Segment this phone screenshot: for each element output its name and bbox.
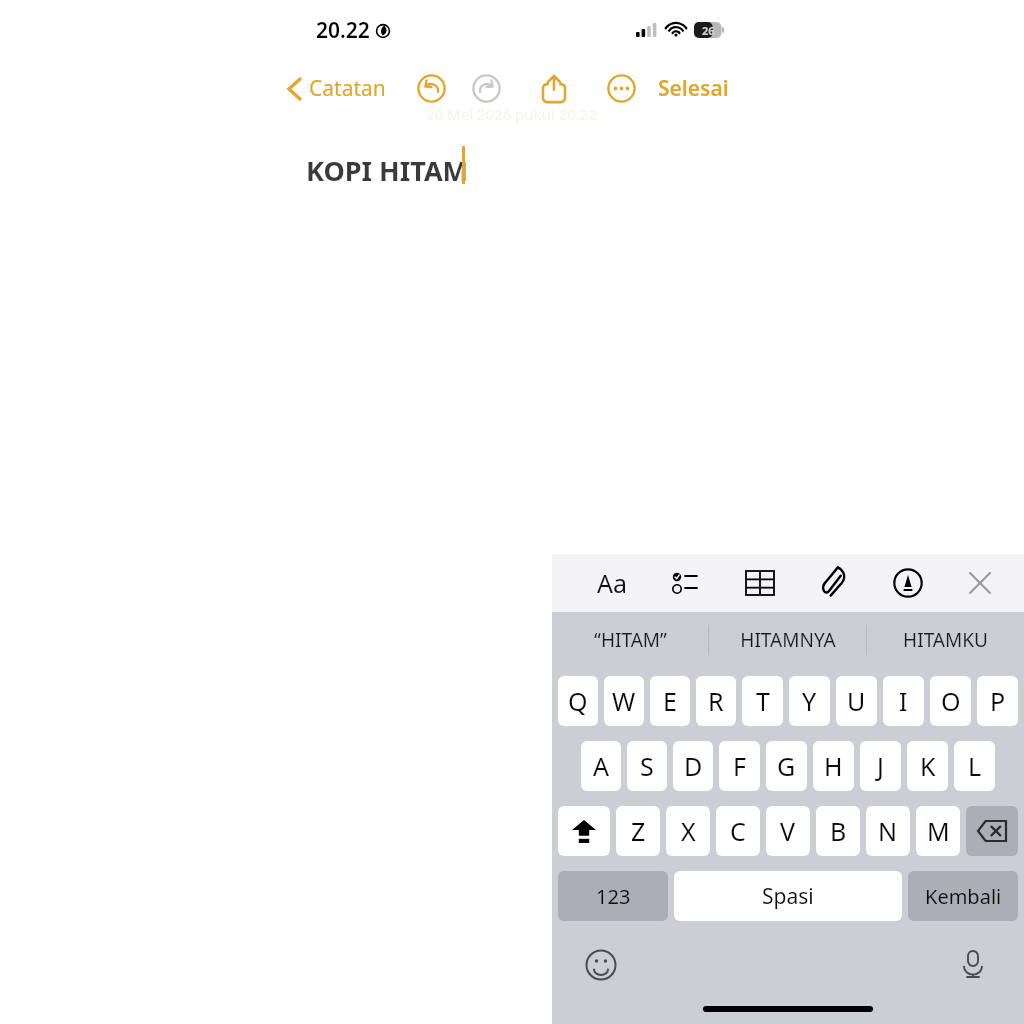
staticText: 20.22	[316, 16, 370, 45]
button[interactable]: V	[766, 806, 810, 856]
button[interactable]: K	[907, 741, 948, 791]
staticText: Kembali	[925, 883, 1002, 910]
button[interactable]: Kembali	[908, 871, 1018, 921]
staticText: Q	[568, 684, 588, 718]
staticText: O	[941, 684, 961, 718]
button[interactable]: G	[766, 741, 807, 791]
button[interactable]: Q	[558, 676, 598, 726]
staticText: D	[684, 749, 703, 783]
button[interactable]: Checklist	[666, 563, 706, 603]
staticText: KOPI HITAM	[306, 152, 469, 189]
staticText: C	[730, 814, 746, 848]
staticText: U	[847, 684, 866, 718]
button[interactable]: Spasi	[674, 871, 902, 921]
staticText: F	[733, 749, 746, 783]
staticText: M	[927, 814, 950, 848]
button[interactable]: Z	[616, 806, 660, 856]
button[interactable]: Emoji	[580, 944, 622, 986]
staticText: E	[663, 684, 677, 718]
button[interactable]: S	[627, 741, 667, 791]
button[interactable]: B	[816, 806, 860, 856]
staticText: B	[830, 814, 847, 848]
staticText: HITAMKU	[903, 627, 988, 653]
button[interactable]: Markup	[888, 563, 928, 603]
button[interactable]: J	[860, 741, 901, 791]
button[interactable]: E	[650, 676, 690, 726]
staticText: 26 Mei 2026 pukul 20.22	[426, 104, 598, 124]
button[interactable]: Dictate	[952, 944, 994, 986]
button[interactable]: I	[883, 676, 924, 726]
staticText: Selesai	[658, 74, 729, 103]
button[interactable]: Catatan	[284, 68, 388, 109]
button[interactable]: More	[600, 67, 642, 109]
button[interactable]: T	[742, 676, 783, 726]
staticText: P	[990, 684, 1006, 718]
button[interactable]: N	[866, 806, 910, 856]
button[interactable]: Attach	[814, 563, 854, 603]
button[interactable]: Text format	[592, 563, 632, 603]
button[interactable]: Share	[533, 67, 575, 109]
staticText: K	[920, 749, 936, 783]
staticText: X	[681, 814, 696, 848]
staticText: A	[593, 749, 609, 783]
staticText: HITAMNYA	[740, 627, 836, 653]
button[interactable]: “HITAM”	[552, 612, 708, 668]
staticText: W	[612, 684, 636, 718]
staticText: N	[878, 814, 898, 848]
button[interactable]: H	[813, 741, 854, 791]
staticText: “HITAM”	[594, 627, 667, 653]
staticText: R	[708, 684, 724, 718]
button[interactable]: C	[716, 806, 760, 856]
button[interactable]: 123	[558, 871, 668, 921]
button[interactable]: F	[719, 741, 760, 791]
button[interactable]: HITAMKU	[867, 612, 1024, 668]
button[interactable]: Selesai	[650, 68, 737, 109]
button[interactable]: HITAMNYA	[709, 612, 866, 668]
staticText: H	[824, 749, 843, 783]
staticText: S	[640, 749, 654, 783]
button[interactable]: Backspace	[966, 806, 1018, 856]
staticText: Spasi	[762, 882, 814, 911]
staticText: Catatan	[309, 74, 386, 103]
staticText: V	[780, 814, 796, 848]
button[interactable]: O	[930, 676, 971, 726]
button[interactable]: L	[954, 741, 995, 791]
button[interactable]: Close	[960, 563, 1000, 603]
staticText: G	[777, 749, 796, 783]
staticText: Aa	[597, 566, 628, 600]
button[interactable]: M	[916, 806, 960, 856]
button[interactable]: Redo	[465, 67, 507, 109]
button[interactable]: Table	[740, 563, 780, 603]
staticText: Y	[802, 684, 817, 718]
staticText: J	[877, 749, 884, 783]
button[interactable]: A	[581, 741, 621, 791]
staticText: 26	[702, 23, 715, 38]
staticText: T	[756, 684, 770, 718]
button[interactable]: Undo	[410, 67, 452, 109]
staticText: L	[968, 749, 982, 783]
button[interactable]: U	[836, 676, 877, 726]
button[interactable]: P	[977, 676, 1018, 726]
button[interactable]: X	[666, 806, 710, 856]
staticText: Z	[631, 814, 646, 848]
button[interactable]: Shift	[558, 806, 610, 856]
staticText: 123	[596, 883, 631, 910]
button[interactable]: D	[673, 741, 713, 791]
button[interactable]: Y	[789, 676, 830, 726]
button[interactable]: R	[696, 676, 736, 726]
staticText: I	[899, 684, 908, 718]
button[interactable]: W	[604, 676, 644, 726]
